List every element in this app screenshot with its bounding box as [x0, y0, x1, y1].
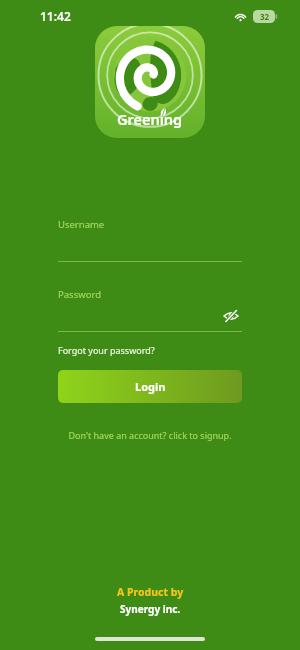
- button[interactable]: Forgot your password?: [58, 342, 155, 358]
- staticText: Greening: [117, 109, 183, 129]
- staticText: 11:42: [40, 8, 71, 24]
- staticText: Synergy inc.: [120, 602, 181, 616]
- button[interactable]: Greening logo: [95, 26, 205, 138]
- button[interactable]: Don't have an account? click to signup.: [58, 429, 242, 441]
- staticText: A Product by: [117, 585, 184, 599]
- button[interactable]: Show password: [58, 301, 242, 331]
- staticText: Password: [58, 288, 101, 301]
- staticText: Don't have an account? click to signup.: [68, 429, 232, 441]
- staticText: Forgot your password?: [58, 344, 155, 356]
- staticText: 32: [260, 11, 270, 22]
- staticText: Login: [135, 379, 166, 394]
- button[interactable]: Show password: [220, 305, 242, 327]
- staticText: Username: [58, 218, 105, 231]
- button[interactable]: Login: [58, 370, 242, 403]
